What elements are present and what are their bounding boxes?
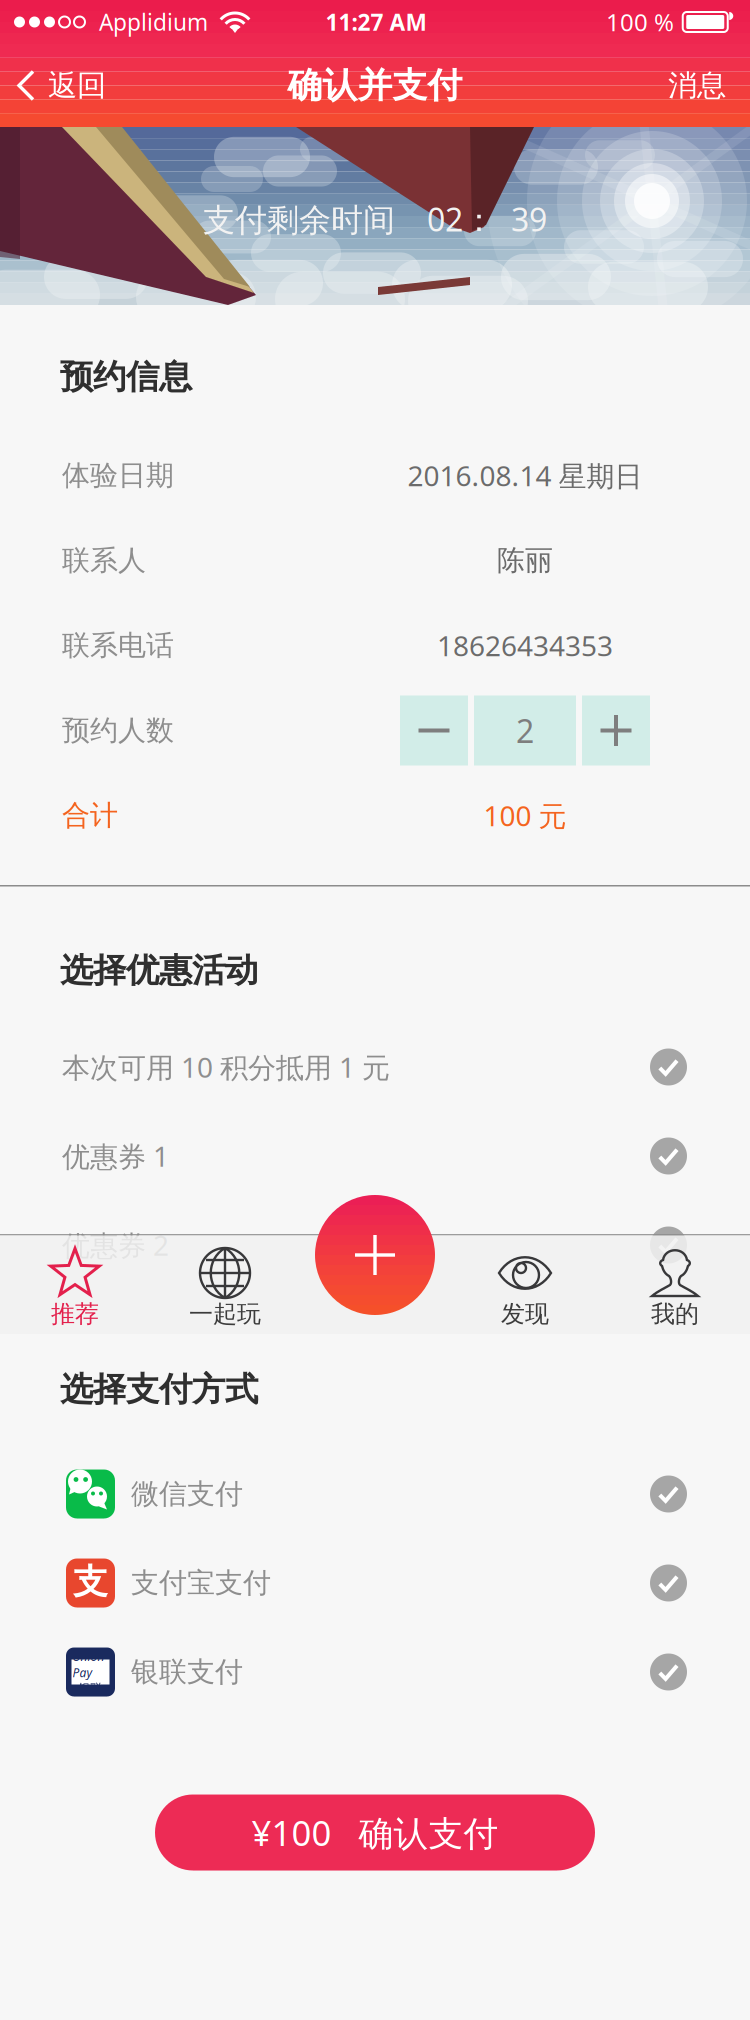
staticText: 消息 — [668, 67, 726, 104]
staticText: 100 % — [606, 6, 674, 38]
staticText: 确认并支付 — [287, 64, 462, 107]
staticText: 银联支付 — [131, 1654, 243, 1690]
staticText: 支 — [73, 1560, 108, 1604]
staticText: 微信支付 — [131, 1476, 243, 1512]
staticText: 本次可用 10 积分抵用 1 元 — [62, 1048, 390, 1086]
staticText: 银联 — [78, 1681, 102, 1696]
staticText: 优惠券 2 — [62, 1226, 169, 1264]
staticText: 2016.08.14 星期日 — [407, 456, 642, 494]
staticText: 2 — [516, 709, 534, 752]
staticText: 支付剩余时间 02： 39 — [203, 197, 547, 241]
button[interactable]: 微信支付 — [0, 1449, 750, 1538]
staticText: ¥100 确认支付 — [251, 1809, 498, 1856]
staticText: 体验日期 — [62, 458, 174, 493]
button[interactable]: Create — [315, 1195, 435, 1315]
button[interactable]: Increase guests — [582, 695, 650, 765]
button[interactable]: UnionPay — [0, 1627, 750, 1716]
staticText: 联系人 — [62, 543, 146, 578]
button[interactable]: 发现 — [450, 1234, 600, 1334]
staticText: 11:27 AM — [325, 7, 426, 37]
button[interactable]: 支 — [0, 1538, 750, 1627]
staticText: 返回 — [48, 67, 106, 104]
staticText: Applidium — [99, 7, 208, 37]
staticText: 优惠券 1 — [62, 1137, 169, 1175]
button[interactable]: 返回 — [0, 44, 126, 127]
staticText: 发现 — [501, 1299, 549, 1329]
staticText: 选择支付方式 — [60, 1368, 258, 1410]
staticText: 100 元 — [483, 796, 566, 834]
button[interactable]: Decrease guests — [400, 695, 468, 765]
button[interactable]: 推荐 — [0, 1234, 150, 1334]
staticText: 陈丽 — [497, 543, 553, 578]
staticText: 合计 — [62, 798, 118, 833]
button[interactable]: ¥100 确认支付 — [155, 1794, 595, 1870]
staticText: 推荐 — [51, 1299, 99, 1329]
staticText: 一起玩 — [189, 1299, 261, 1329]
staticText: 我的 — [651, 1299, 699, 1329]
button[interactable]: 我的 — [600, 1234, 750, 1334]
button[interactable]: 消息 — [644, 44, 750, 127]
staticText: 预约人数 — [62, 713, 174, 748]
button[interactable]: 本次可用 10 积分抵用 1 元 — [0, 1022, 750, 1111]
button[interactable]: 优惠券 1 — [0, 1111, 750, 1200]
staticText: 联系电话 — [62, 628, 174, 663]
staticText: 支付宝支付 — [131, 1565, 271, 1601]
staticText: UnionPay — [72, 1648, 108, 1681]
staticText: 18626434353 — [437, 626, 613, 664]
button[interactable]: 一起玩 — [150, 1234, 300, 1334]
staticText: 预约信息 — [60, 356, 192, 398]
staticText: 选择优惠活动 — [60, 949, 258, 991]
button[interactable]: 优惠券 2 — [0, 1200, 750, 1289]
